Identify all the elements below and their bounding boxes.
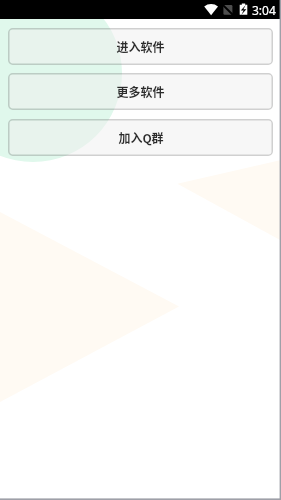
staticText: 更多软件 bbox=[116, 83, 165, 100]
staticText: 进入软件 bbox=[116, 38, 165, 55]
button[interactable]: 进入软件 bbox=[8, 28, 273, 65]
button[interactable]: 加入Q群 bbox=[8, 119, 273, 156]
staticText: 加入Q群 bbox=[118, 129, 164, 146]
other: Wi-Fi, no signal, battery charging bbox=[0, 0, 281, 19]
button[interactable]: 更多软件 bbox=[8, 73, 273, 110]
staticText: 3:04 bbox=[252, 2, 276, 18]
